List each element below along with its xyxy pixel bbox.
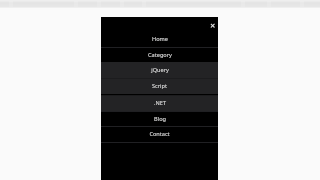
button[interactable]: jQuery (101, 62, 218, 78)
staticText: Category (148, 51, 172, 59)
button[interactable]: Category (101, 47, 218, 63)
staticText: jQuery (151, 66, 169, 74)
button[interactable]: .NET (101, 95, 218, 111)
button[interactable]: Home (101, 31, 218, 47)
staticText: ✕ (210, 22, 216, 29)
staticText: Blog (154, 115, 166, 123)
staticText: Home (152, 35, 168, 43)
button[interactable]: Script (101, 78, 218, 94)
staticText: Contact (149, 130, 170, 138)
button[interactable]: Contact (101, 126, 218, 142)
staticText: Script (152, 82, 167, 90)
button[interactable]: Close menu (207, 19, 219, 31)
button[interactable]: Blog (101, 111, 218, 126)
staticText: .NET (154, 99, 166, 107)
